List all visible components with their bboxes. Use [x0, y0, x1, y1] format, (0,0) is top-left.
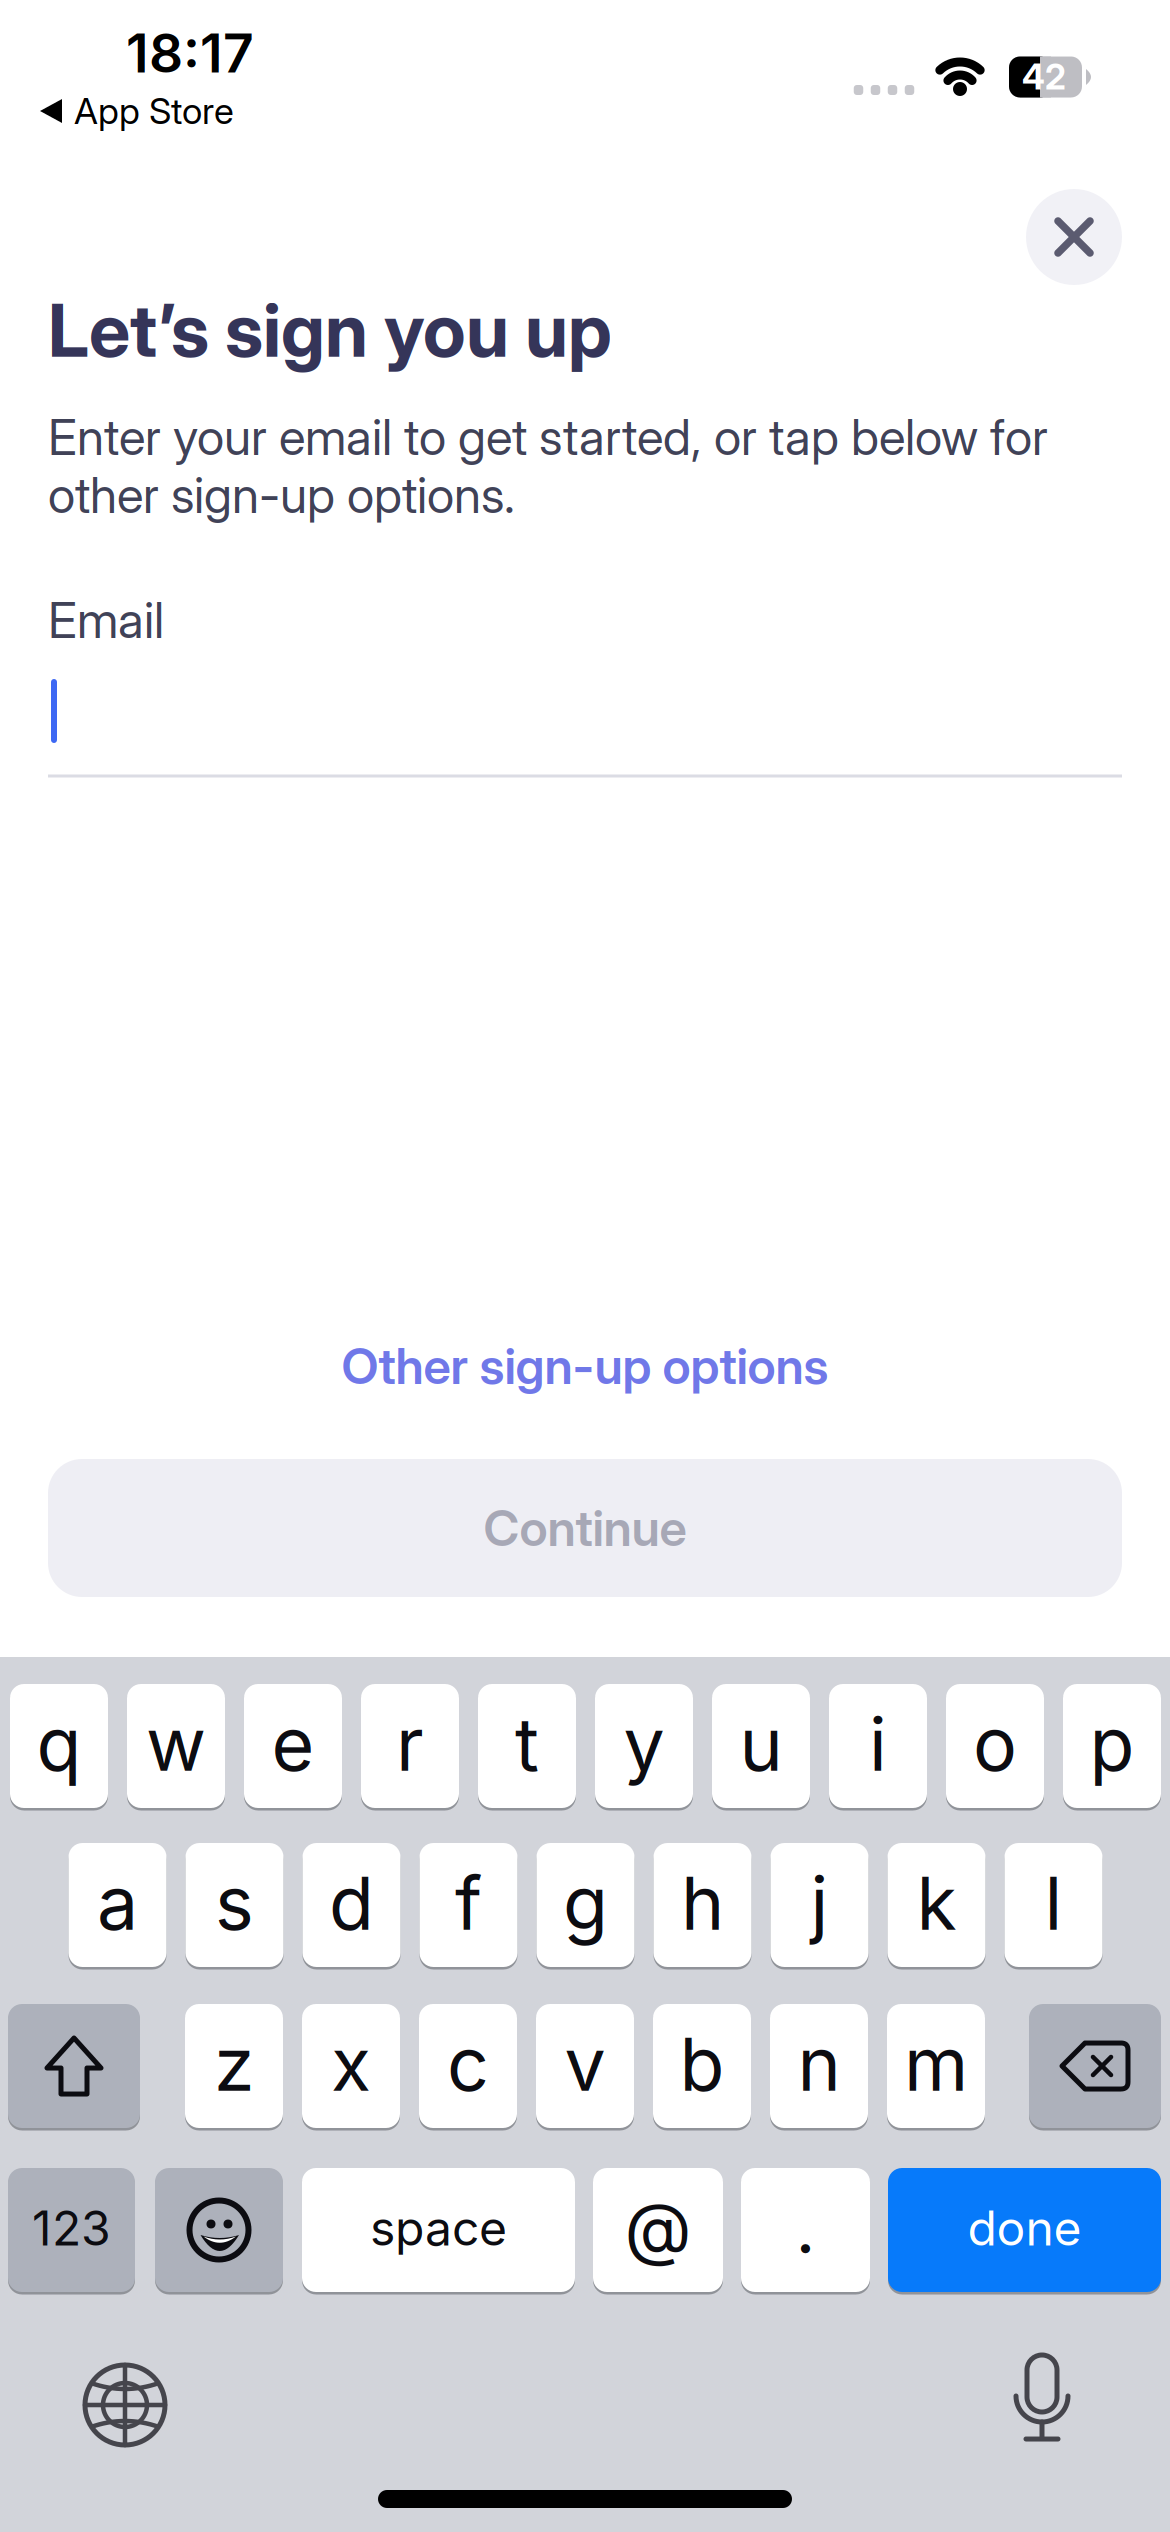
staticText: . [795, 2187, 815, 2269]
button[interactable]: Back to App Store [40, 89, 340, 133]
button[interactable]: h [653, 1841, 751, 1968]
button[interactable]: u [712, 1682, 810, 1809]
button[interactable]: x [302, 2002, 400, 2129]
button[interactable]: l [1004, 1841, 1102, 1968]
staticText: other sign-up options. [48, 465, 515, 525]
button[interactable]: o [946, 1682, 1044, 1809]
staticText: Let’s sign you up [48, 286, 612, 374]
staticText: k [916, 1860, 956, 1946]
staticText: d [329, 1860, 374, 1946]
button[interactable]: j [770, 1841, 868, 1968]
staticText: Enter your email to get started, or tap … [48, 407, 1048, 467]
staticText: p [1089, 1701, 1134, 1787]
button[interactable]: g [536, 1841, 634, 1968]
staticText: App Store [74, 90, 234, 132]
button[interactable]: . [741, 2166, 870, 2293]
staticText: 18:17 [126, 21, 254, 84]
staticText: z [214, 2021, 254, 2107]
button[interactable]: Shift [8, 2002, 140, 2129]
staticText: i [869, 1701, 887, 1787]
staticText: v [564, 2021, 605, 2107]
button[interactable]: e [244, 1682, 342, 1809]
staticText: t [515, 1701, 539, 1787]
staticText: j [810, 1860, 828, 1946]
staticText: y [623, 1701, 664, 1787]
button[interactable]: v [536, 2002, 634, 2129]
staticText: x [331, 2021, 371, 2107]
staticText: w [146, 1701, 206, 1787]
button[interactable]: y [595, 1682, 693, 1809]
button[interactable]: p [1063, 1682, 1161, 1809]
button[interactable]: n [770, 2002, 868, 2129]
button[interactable]: Dictation [1010, 2353, 1074, 2443]
staticText: o [973, 1701, 1017, 1787]
button[interactable]: a [68, 1841, 166, 1968]
staticText: c [447, 2021, 489, 2107]
staticText: h [681, 1860, 724, 1946]
staticText: Email [48, 590, 164, 650]
button[interactable]: f [419, 1841, 517, 1968]
button[interactable]: done [888, 2166, 1161, 2293]
staticText: u [739, 1701, 782, 1787]
button[interactable]: Emoji [155, 2166, 283, 2293]
staticText: l [1044, 1860, 1062, 1946]
staticText: Continue [483, 1498, 686, 1558]
button[interactable]: t [478, 1682, 576, 1809]
staticText: 42 [1022, 56, 1066, 98]
staticText: s [215, 1860, 254, 1946]
button[interactable]: Continue [48, 1459, 1122, 1597]
button[interactable]: Email [48, 580, 1122, 780]
button[interactable]: s [185, 1841, 283, 1968]
button[interactable]: c [419, 2002, 517, 2129]
staticText: e [271, 1701, 314, 1787]
button[interactable]: space [302, 2166, 575, 2293]
button[interactable]: Delete [1029, 2002, 1161, 2129]
staticText: g [563, 1860, 608, 1946]
button[interactable]: q [10, 1682, 108, 1809]
button[interactable]: r [361, 1682, 459, 1809]
staticText: m [904, 2021, 968, 2107]
staticText: r [396, 1701, 424, 1787]
button[interactable]: w [127, 1682, 225, 1809]
button[interactable]: m [887, 2002, 985, 2129]
button[interactable]: i [829, 1682, 927, 1809]
button[interactable]: Next keyboard [82, 2362, 168, 2448]
staticText: Other sign-up options [341, 1336, 828, 1396]
button[interactable]: 123 [8, 2166, 135, 2293]
button[interactable]: b [653, 2002, 751, 2129]
button[interactable]: k [887, 1841, 985, 1968]
staticText: 123 [32, 2200, 111, 2256]
staticText: done [967, 2200, 1081, 2256]
button[interactable]: Other sign-up options [341, 1336, 828, 1396]
staticText: f [455, 1860, 482, 1946]
button[interactable]: @ [593, 2166, 723, 2293]
button[interactable]: Close [1026, 189, 1122, 285]
staticText: b [679, 2021, 724, 2107]
staticText: a [97, 1860, 138, 1946]
staticText: q [36, 1701, 81, 1787]
staticText: @ [624, 2187, 691, 2269]
staticText: space [370, 2200, 507, 2256]
staticText: n [797, 2021, 840, 2107]
button[interactable]: z [185, 2002, 283, 2129]
button[interactable]: d [302, 1841, 400, 1968]
